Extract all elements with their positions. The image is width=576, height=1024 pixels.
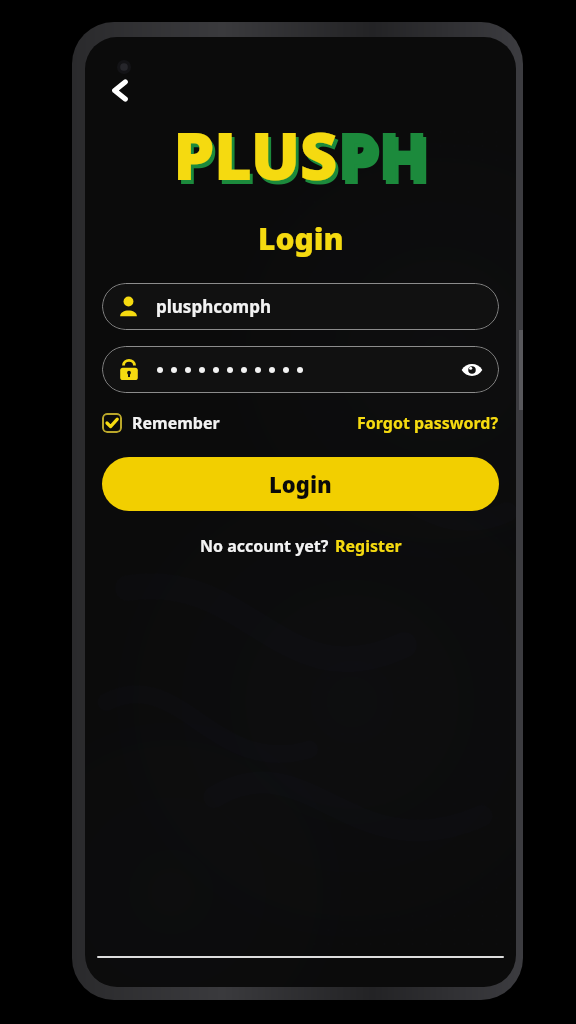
- staticText: No account yet?: [200, 535, 329, 557]
- button[interactable]: plusphcomph: [102, 283, 499, 330]
- staticText: Register: [335, 535, 402, 557]
- staticText: plusphcomph: [156, 295, 271, 318]
- button[interactable]: Show password: [102, 346, 499, 393]
- button[interactable]: Back: [97, 67, 143, 113]
- button[interactable]: Show password: [455, 353, 489, 387]
- staticText: Login: [269, 469, 332, 499]
- button[interactable]: Register: [335, 535, 402, 557]
- button[interactable]: Forgot password?: [357, 409, 499, 437]
- button[interactable]: Login: [102, 457, 499, 511]
- staticText: PH: [340, 113, 431, 203]
- staticText: Login: [258, 218, 344, 259]
- staticText: Remember: [132, 412, 220, 434]
- staticText: PLUS: [173, 109, 337, 199]
- staticText: Forgot password?: [357, 412, 499, 434]
- button[interactable]: Remember: [102, 409, 220, 437]
- staticText: PH: [337, 109, 428, 199]
- staticText: PLUS: [176, 113, 340, 203]
